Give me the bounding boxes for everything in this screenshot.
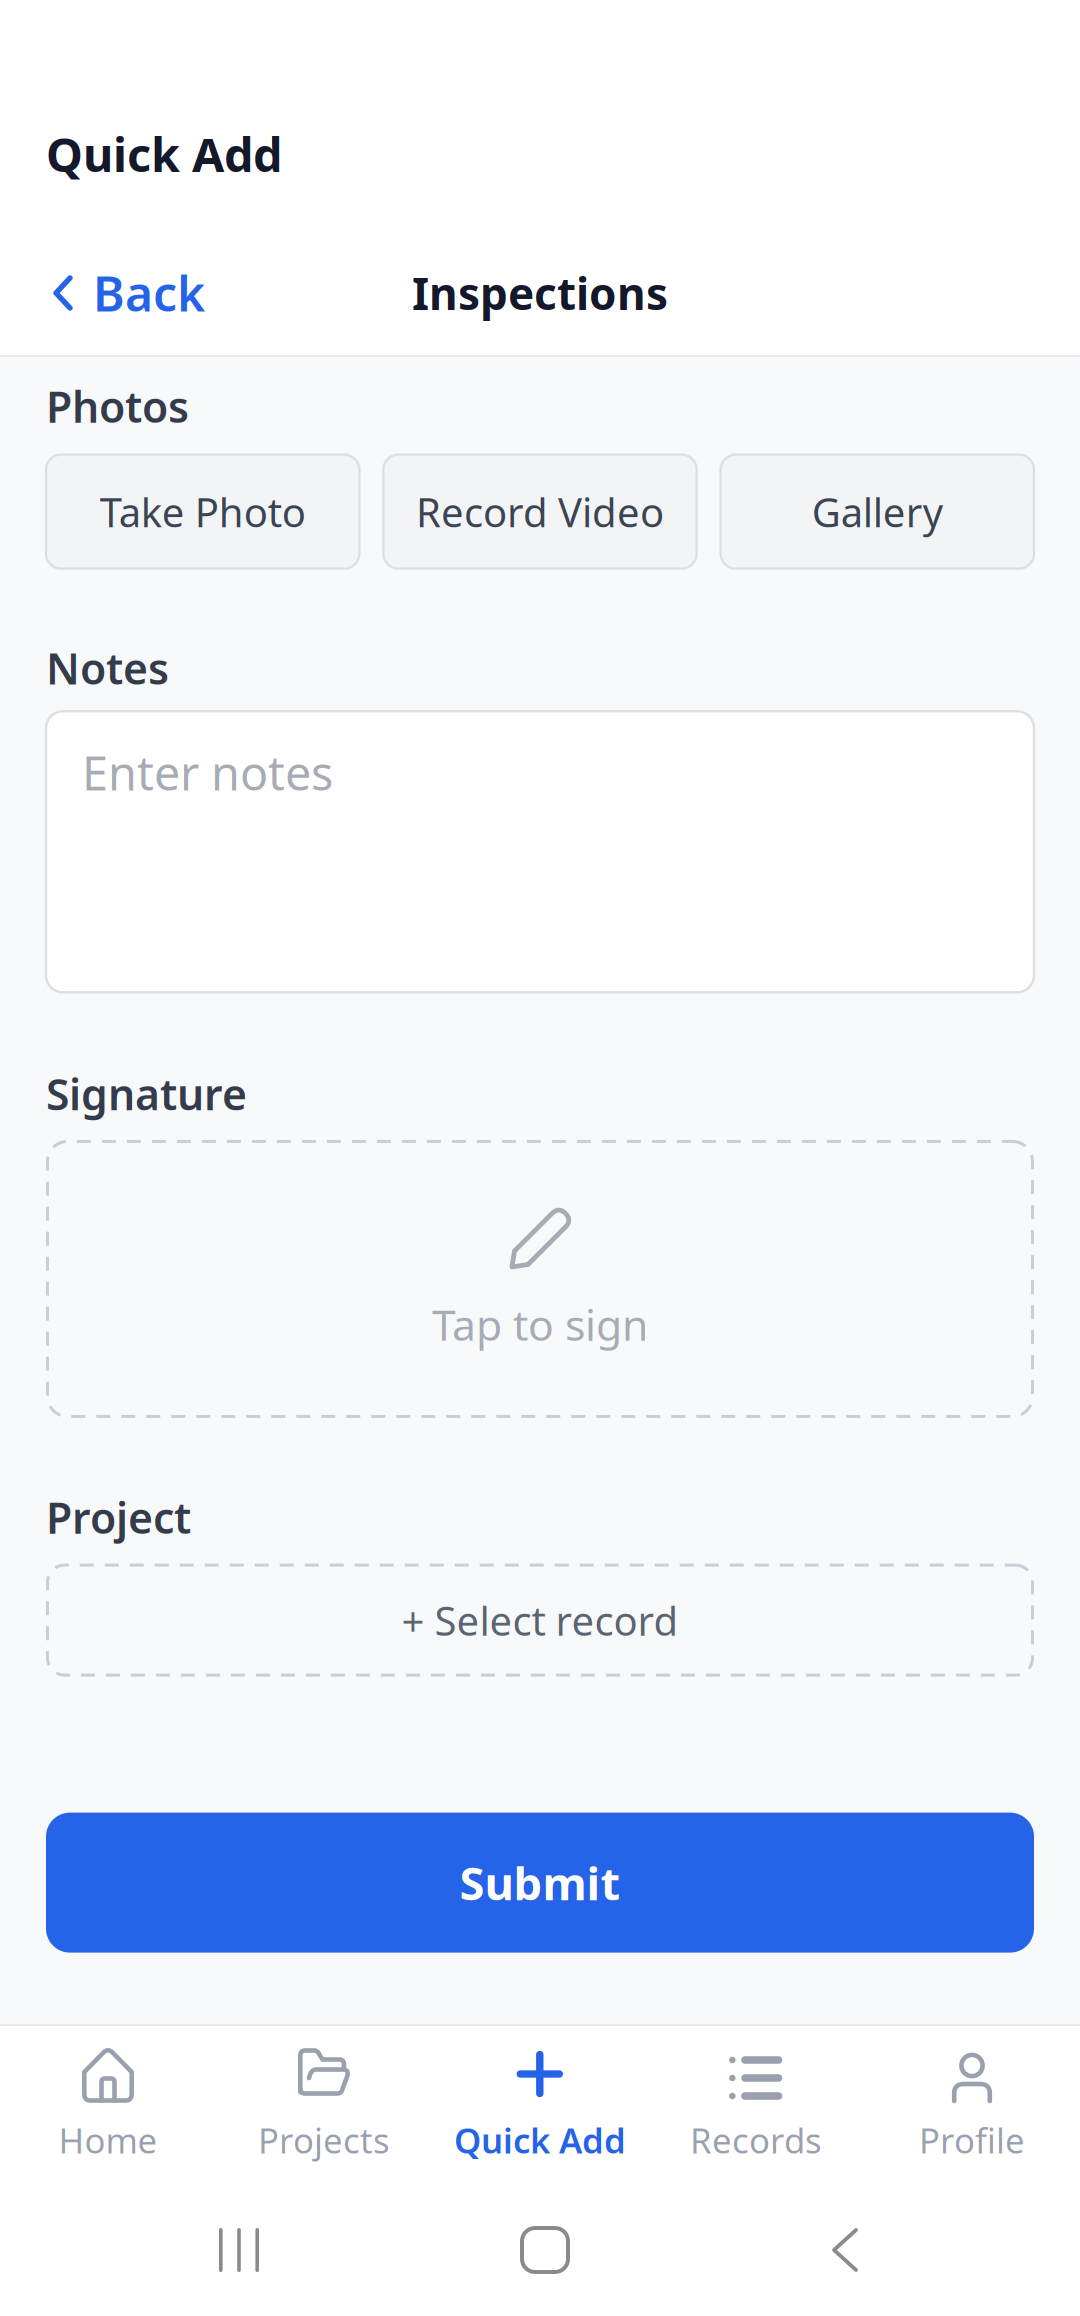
button[interactable]: Enter notes: [46, 711, 1034, 992]
staticText: Enter notes: [82, 741, 333, 803]
staticText: Profile: [919, 2117, 1025, 2163]
button[interactable]: Records: [648, 2046, 864, 2200]
staticText: + Select record: [401, 1594, 678, 1647]
button[interactable]: Submit: [46, 1813, 1034, 1953]
staticText: Photos: [46, 378, 189, 435]
button[interactable]: Quick Add: [432, 2046, 648, 2200]
button[interactable]: Gallery: [721, 455, 1034, 569]
staticText: Quick Add: [454, 2117, 626, 2163]
button[interactable]: Tap to sign: [46, 1140, 1034, 1418]
staticText: Inspections: [412, 264, 668, 322]
staticText: Signature: [46, 1065, 247, 1122]
button[interactable]: Recent apps: [219, 2228, 259, 2272]
staticText: Gallery: [812, 485, 943, 538]
staticText: Home: [58, 2117, 157, 2163]
staticText: Record Video: [416, 485, 664, 538]
button[interactable]: Back: [831, 2228, 859, 2272]
button[interactable]: Back: [46, 262, 205, 324]
staticText: Back: [93, 261, 205, 325]
staticText: Records: [690, 2117, 822, 2163]
button[interactable]: Take Photo: [46, 455, 359, 569]
staticText: Submit: [459, 1852, 620, 1913]
staticText: Notes: [46, 640, 169, 696]
button[interactable]: Home: [522, 2228, 568, 2272]
button[interactable]: Record Video: [383, 455, 697, 569]
button[interactable]: Projects: [216, 2046, 432, 2200]
staticText: Tap to sign: [432, 1296, 648, 1353]
button[interactable]: Home: [0, 2046, 216, 2200]
button[interactable]: + Select record: [46, 1564, 1034, 1677]
staticText: Take Photo: [100, 485, 306, 538]
staticText: Quick Add: [46, 123, 282, 185]
staticText: Projects: [258, 2117, 390, 2163]
staticText: Project: [46, 1489, 191, 1546]
button[interactable]: Profile: [864, 2046, 1080, 2200]
